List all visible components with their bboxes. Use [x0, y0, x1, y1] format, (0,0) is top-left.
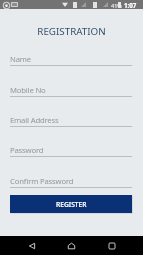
- staticText: Password: [10, 145, 44, 155]
- button[interactable]: Password: [10, 140, 132, 157]
- staticText: Name: [10, 54, 31, 64]
- staticText: Email Address: [10, 115, 59, 125]
- button[interactable]: Mobile No: [10, 80, 132, 97]
- staticText: Mobile No: [10, 85, 46, 95]
- staticText: REGISTER: [56, 200, 87, 209]
- button[interactable]: Recent apps: [101, 239, 122, 253]
- button[interactable]: Home: [61, 239, 82, 253]
- button[interactable]: Back: [21, 239, 42, 253]
- button[interactable]: Confirm Password: [10, 171, 132, 188]
- staticText: 1:07: [124, 1, 137, 9]
- staticText: REGISTRATION: [0, 25, 143, 38]
- staticText: 41%: [111, 2, 122, 9]
- staticText: Confirm Password: [10, 176, 74, 186]
- button[interactable]: Name: [10, 49, 132, 66]
- button[interactable]: Email Address: [10, 110, 132, 127]
- button[interactable]: REGISTER: [10, 195, 132, 213]
